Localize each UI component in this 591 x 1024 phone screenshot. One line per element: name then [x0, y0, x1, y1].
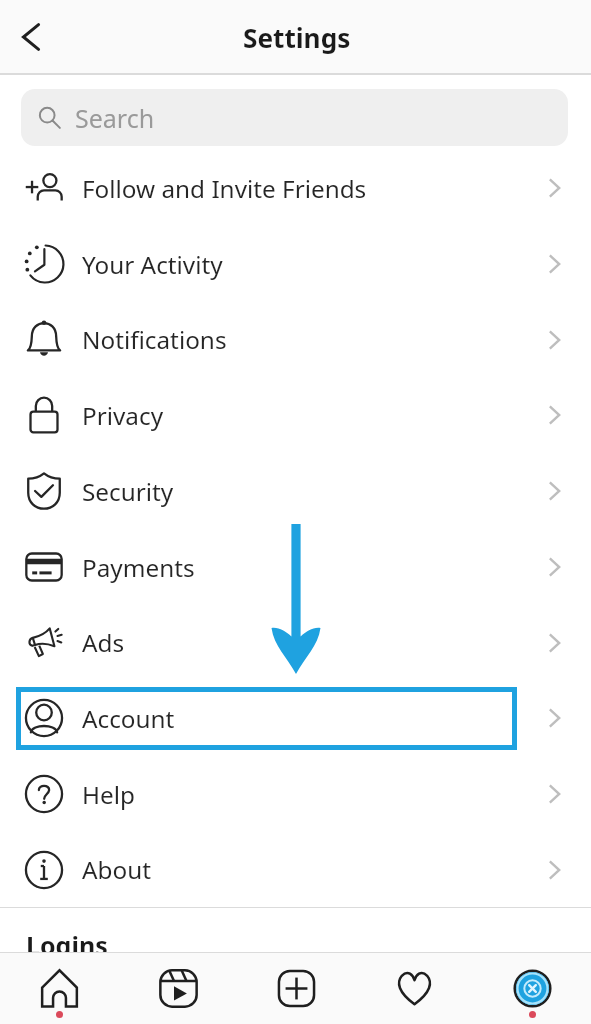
button[interactable]: Notifications	[0, 302, 591, 377]
button[interactable]: Payments	[0, 529, 591, 605]
button[interactable]: Activity	[355, 953, 473, 1024]
staticText: Security	[82, 475, 174, 508]
staticText: About	[82, 853, 151, 886]
button[interactable]: Security	[0, 453, 591, 529]
staticText: Payments	[82, 551, 195, 584]
staticText: Settings	[243, 20, 351, 56]
staticText: Your Activity	[82, 248, 223, 281]
staticText: Search	[75, 101, 155, 135]
button[interactable]: Account	[0, 680, 591, 756]
staticText: Logins	[26, 928, 108, 952]
button[interactable]: Profile	[473, 953, 591, 1024]
staticText: Follow and Invite Friends	[82, 172, 367, 205]
button[interactable]: Home	[0, 953, 119, 1024]
button[interactable]: Create	[237, 953, 355, 1024]
staticText: Notifications	[82, 323, 227, 356]
button[interactable]: Ads	[0, 605, 591, 680]
button[interactable]: Back	[7, 13, 55, 61]
button[interactable]: Follow and Invite Friends	[0, 150, 591, 226]
staticText: Ads	[82, 626, 125, 659]
staticText: Account	[82, 702, 175, 735]
staticText: Help	[82, 778, 135, 811]
button[interactable]: Privacy	[0, 377, 591, 453]
button[interactable]: Search	[21, 89, 568, 146]
button[interactable]: Help	[0, 756, 591, 832]
button[interactable]: About	[0, 832, 591, 907]
staticText: Privacy	[82, 399, 164, 432]
button[interactable]: Your Activity	[0, 226, 591, 302]
button[interactable]: Reels	[119, 953, 237, 1024]
